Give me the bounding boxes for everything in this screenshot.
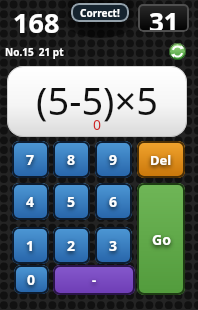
staticText: - — [92, 271, 97, 289]
button[interactable]: 8 — [53, 141, 90, 178]
staticText: 8 — [67, 150, 76, 169]
button[interactable]: 5 — [53, 183, 90, 220]
staticText: Go — [152, 230, 171, 249]
staticText: 0 — [27, 270, 36, 289]
button[interactable]: 0 — [14, 265, 49, 294]
staticText: Del — [150, 151, 172, 169]
button[interactable]: 1 — [12, 227, 49, 264]
staticText: 31 — [149, 4, 179, 32]
staticText: 9 — [109, 150, 118, 169]
staticText: 168 — [13, 4, 60, 41]
button[interactable]: 4 — [12, 183, 49, 220]
staticText: No.15 21 pt — [5, 45, 64, 59]
staticText: 3 — [109, 236, 118, 255]
button[interactable]: 3 — [95, 227, 132, 264]
button[interactable]: Del — [137, 141, 185, 178]
staticText: 0 — [93, 115, 102, 134]
staticText: 7 — [26, 150, 35, 169]
button[interactable]: - — [53, 265, 135, 295]
button[interactable]: 9 — [95, 141, 132, 178]
button[interactable]: 2 — [53, 227, 90, 264]
staticText: 2 — [67, 236, 76, 255]
staticText: Correct! — [80, 6, 120, 20]
button[interactable]: 6 — [95, 183, 132, 220]
staticText: 6 — [109, 192, 118, 211]
button[interactable]: Correct! — [71, 3, 129, 22]
staticText: 5 — [67, 192, 76, 211]
button[interactable]: 7 — [12, 141, 49, 178]
button[interactable]: Go — [137, 183, 185, 295]
staticText: 1 — [26, 236, 35, 255]
staticText: (5-5)×5 — [36, 74, 158, 126]
button[interactable] — [169, 43, 186, 60]
staticText: 4 — [26, 192, 35, 211]
